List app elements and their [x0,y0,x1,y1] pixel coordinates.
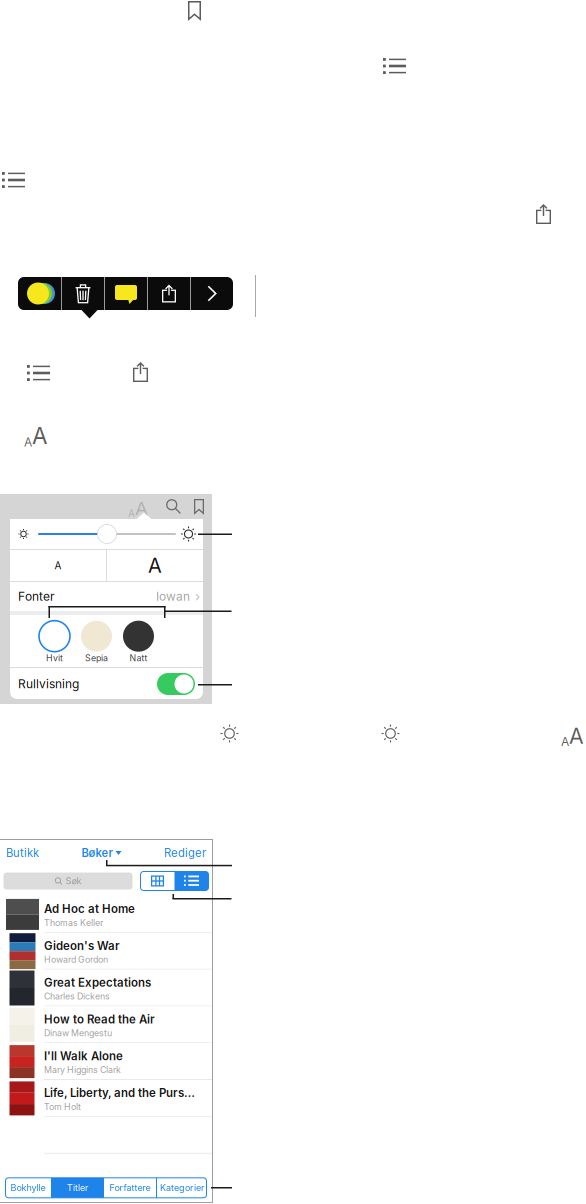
staticText: A [32,422,47,449]
button[interactable]: Table of contents [383,58,406,74]
staticText: › [195,588,200,604]
button[interactable]: Bookmark [194,499,204,514]
button[interactable]: Kategorier [157,1178,207,1198]
button[interactable]: Great Expectations [0,970,212,1006]
button[interactable]: Brightness [220,724,239,743]
staticText: Forfattere [109,1182,150,1193]
button[interactable]: Rediger [164,846,206,860]
staticText: A [128,507,135,520]
button[interactable]: A [107,550,203,581]
staticText: Titler [67,1182,88,1193]
button[interactable]: More [191,277,233,310]
button[interactable]: Share [148,277,190,310]
staticText: Tom Holt [44,1101,81,1112]
button[interactable]: Grid view [140,871,174,890]
button[interactable]: Forfattere [104,1178,156,1198]
button[interactable]: Font size [24,422,47,449]
button[interactable]: Gideon's War [0,933,212,970]
staticText: A [54,559,61,572]
staticText: Rediger [164,846,206,860]
button[interactable]: Brightness [381,724,400,743]
button[interactable]: Ad Hoc at Home [0,896,212,933]
button[interactable]: Highlight colour [18,277,61,310]
staticText: A [569,723,584,749]
button[interactable]: Fonter [10,582,203,611]
button[interactable]: Search [166,499,181,514]
staticText: Life, Liberty, and the Purs… [44,1086,195,1100]
staticText: Fonter [18,589,55,604]
staticText: A [148,553,162,578]
staticText: Hvit [46,653,63,663]
staticText: Thomas Keller [44,917,103,928]
staticText: Howard Gordon [44,954,108,965]
button[interactable]: Titler [52,1178,103,1198]
button[interactable]: Share [133,362,148,382]
staticText: Charles Dickens [44,991,110,1002]
button[interactable]: Table of contents [2,172,25,188]
button[interactable]: Hvit [33,618,75,666]
staticText: A [135,497,148,520]
staticText: Ad Hoc at Home [44,902,135,916]
button[interactable]: Bøker [81,846,121,860]
button[interactable]: List view [174,871,208,890]
staticText: Gideon's War [44,939,120,953]
staticText: Sepia [85,653,108,663]
button[interactable]: Bookmark [188,1,201,20]
button[interactable]: Appearance [128,497,148,520]
staticText: Rullvisning [18,677,79,691]
staticText: Iowan [156,589,190,604]
button[interactable]: Delete highlight [62,277,104,310]
staticText: Søk [65,875,81,886]
button[interactable]: Table of contents [27,365,50,381]
button[interactable]: Add note [105,277,147,310]
staticText: A [561,734,569,749]
button[interactable]: Sepia [75,618,117,666]
button[interactable]: Font size [561,723,584,749]
staticText: Natt [129,653,147,663]
button[interactable]: Share [536,204,551,224]
button[interactable]: Scrolling view [157,673,195,695]
staticText: I'll Walk Alone [44,1049,123,1063]
button[interactable]: A [10,550,106,581]
staticText: Mary Higgins Clark [44,1065,121,1075]
staticText: Kategorier [160,1182,204,1193]
button[interactable]: Life, Liberty, and the Purs… [0,1080,212,1117]
button[interactable]: How to Read the Air [0,1006,212,1043]
staticText: A [24,435,32,449]
staticText: How to Read the Air [44,1012,155,1026]
button[interactable]: Natt [117,618,159,666]
staticText: Bokhylle [10,1182,45,1193]
staticText: Butikk [6,846,39,860]
staticText: Great Expectations [44,976,151,989]
button[interactable]: I'll Walk Alone [0,1043,212,1080]
button[interactable]: Bokhylle [5,1178,51,1198]
staticText: Bøker [81,846,112,860]
button[interactable]: Butikk [6,846,39,860]
staticText: Dinaw Mengestu [44,1028,112,1038]
